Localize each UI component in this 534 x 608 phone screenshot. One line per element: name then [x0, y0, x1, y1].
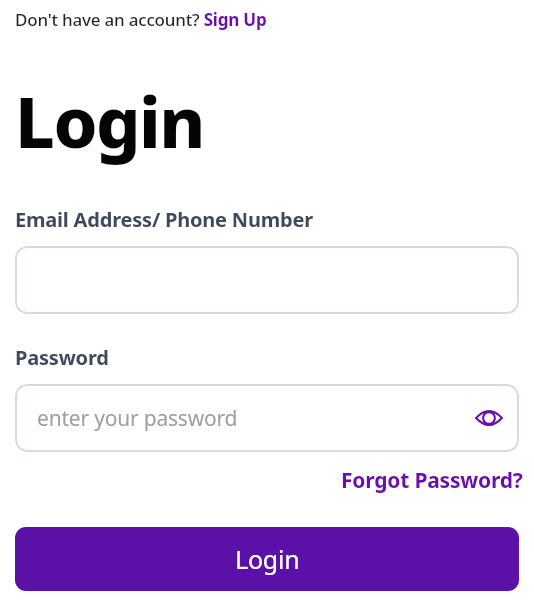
- button[interactable]: [15, 246, 519, 314]
- staticText: Forgot Password?: [341, 466, 523, 495]
- staticText: Don't have an account? Sign Up: [15, 8, 267, 31]
- button[interactable]: Login: [15, 527, 519, 591]
- button[interactable]: enter your password: [15, 384, 519, 452]
- staticText: Login: [15, 73, 204, 168]
- staticText: Password: [15, 344, 109, 371]
- staticText: Login: [235, 542, 300, 576]
- staticText: enter your password: [37, 404, 238, 433]
- button[interactable]: Don't have an account? Sign Up: [15, 8, 267, 31]
- button[interactable]: Forgot Password?: [341, 466, 523, 495]
- button[interactable]: Show password: [469, 398, 509, 438]
- staticText: Email Address/ Phone Number: [15, 206, 313, 233]
